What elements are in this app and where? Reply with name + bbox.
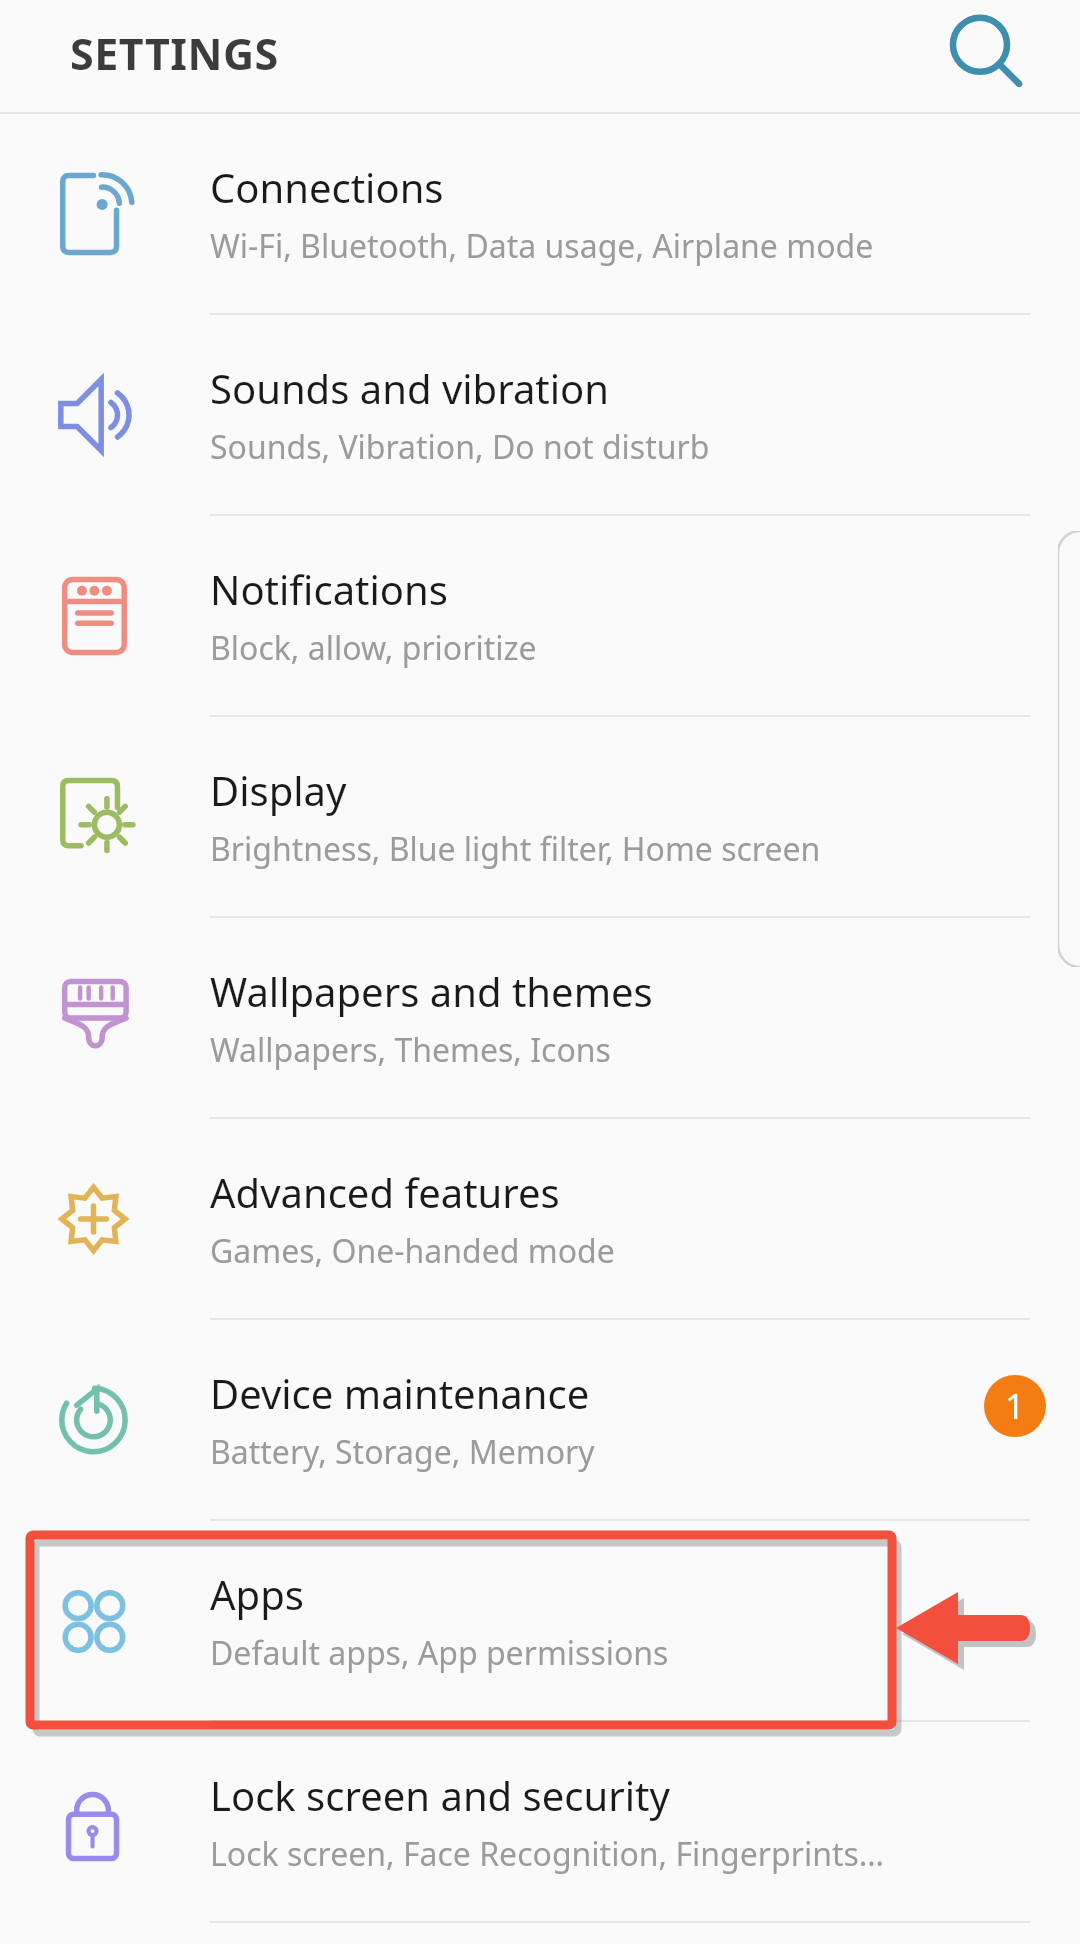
staticText: Wi-Fi, Bluetooth, Data usage, Airplane m… <box>210 224 874 268</box>
staticText: 1 <box>1005 1383 1025 1429</box>
staticText: Default apps, App permissions <box>210 1631 669 1675</box>
button[interactable]: Wallpapers and themes <box>0 918 1080 1117</box>
button[interactable]: Notifications <box>0 516 1080 715</box>
button[interactable]: Device maintenance <box>0 1320 1080 1519</box>
staticText: Games, One-handed mode <box>210 1229 615 1273</box>
staticText: Notifications <box>210 562 448 616</box>
staticText: Wallpapers and themes <box>210 964 653 1018</box>
button[interactable]: Connections <box>0 114 1080 313</box>
staticText: Sounds, Vibration, Do not disturb <box>210 425 710 469</box>
staticText: Lock screen, Face Recognition, Fingerpri… <box>210 1832 885 1876</box>
staticText: Display <box>210 763 347 817</box>
staticText: Advanced features <box>210 1165 560 1219</box>
staticText: Battery, Storage, Memory <box>210 1430 595 1474</box>
staticText: Block, allow, prioritize <box>210 626 537 670</box>
staticText: Apps <box>210 1567 304 1621</box>
staticText: Sounds and vibration <box>210 361 609 415</box>
staticText: Brightness, Blue light filter, Home scre… <box>210 827 821 871</box>
staticText: Wallpapers, Themes, Icons <box>210 1028 611 1072</box>
staticText: Lock screen and security <box>210 1768 670 1822</box>
button[interactable]: Advanced features <box>0 1119 1080 1318</box>
staticText: SETTINGS <box>70 24 279 83</box>
button[interactable]: Display <box>0 717 1080 916</box>
button[interactable]: Lock screen and security <box>0 1722 1080 1921</box>
button[interactable]: Sounds and vibration <box>0 315 1080 514</box>
staticText: Device maintenance <box>210 1366 590 1420</box>
button[interactable]: Apps <box>0 1521 1080 1720</box>
staticText: Connections <box>210 160 444 214</box>
button[interactable]: Search <box>928 0 1032 103</box>
